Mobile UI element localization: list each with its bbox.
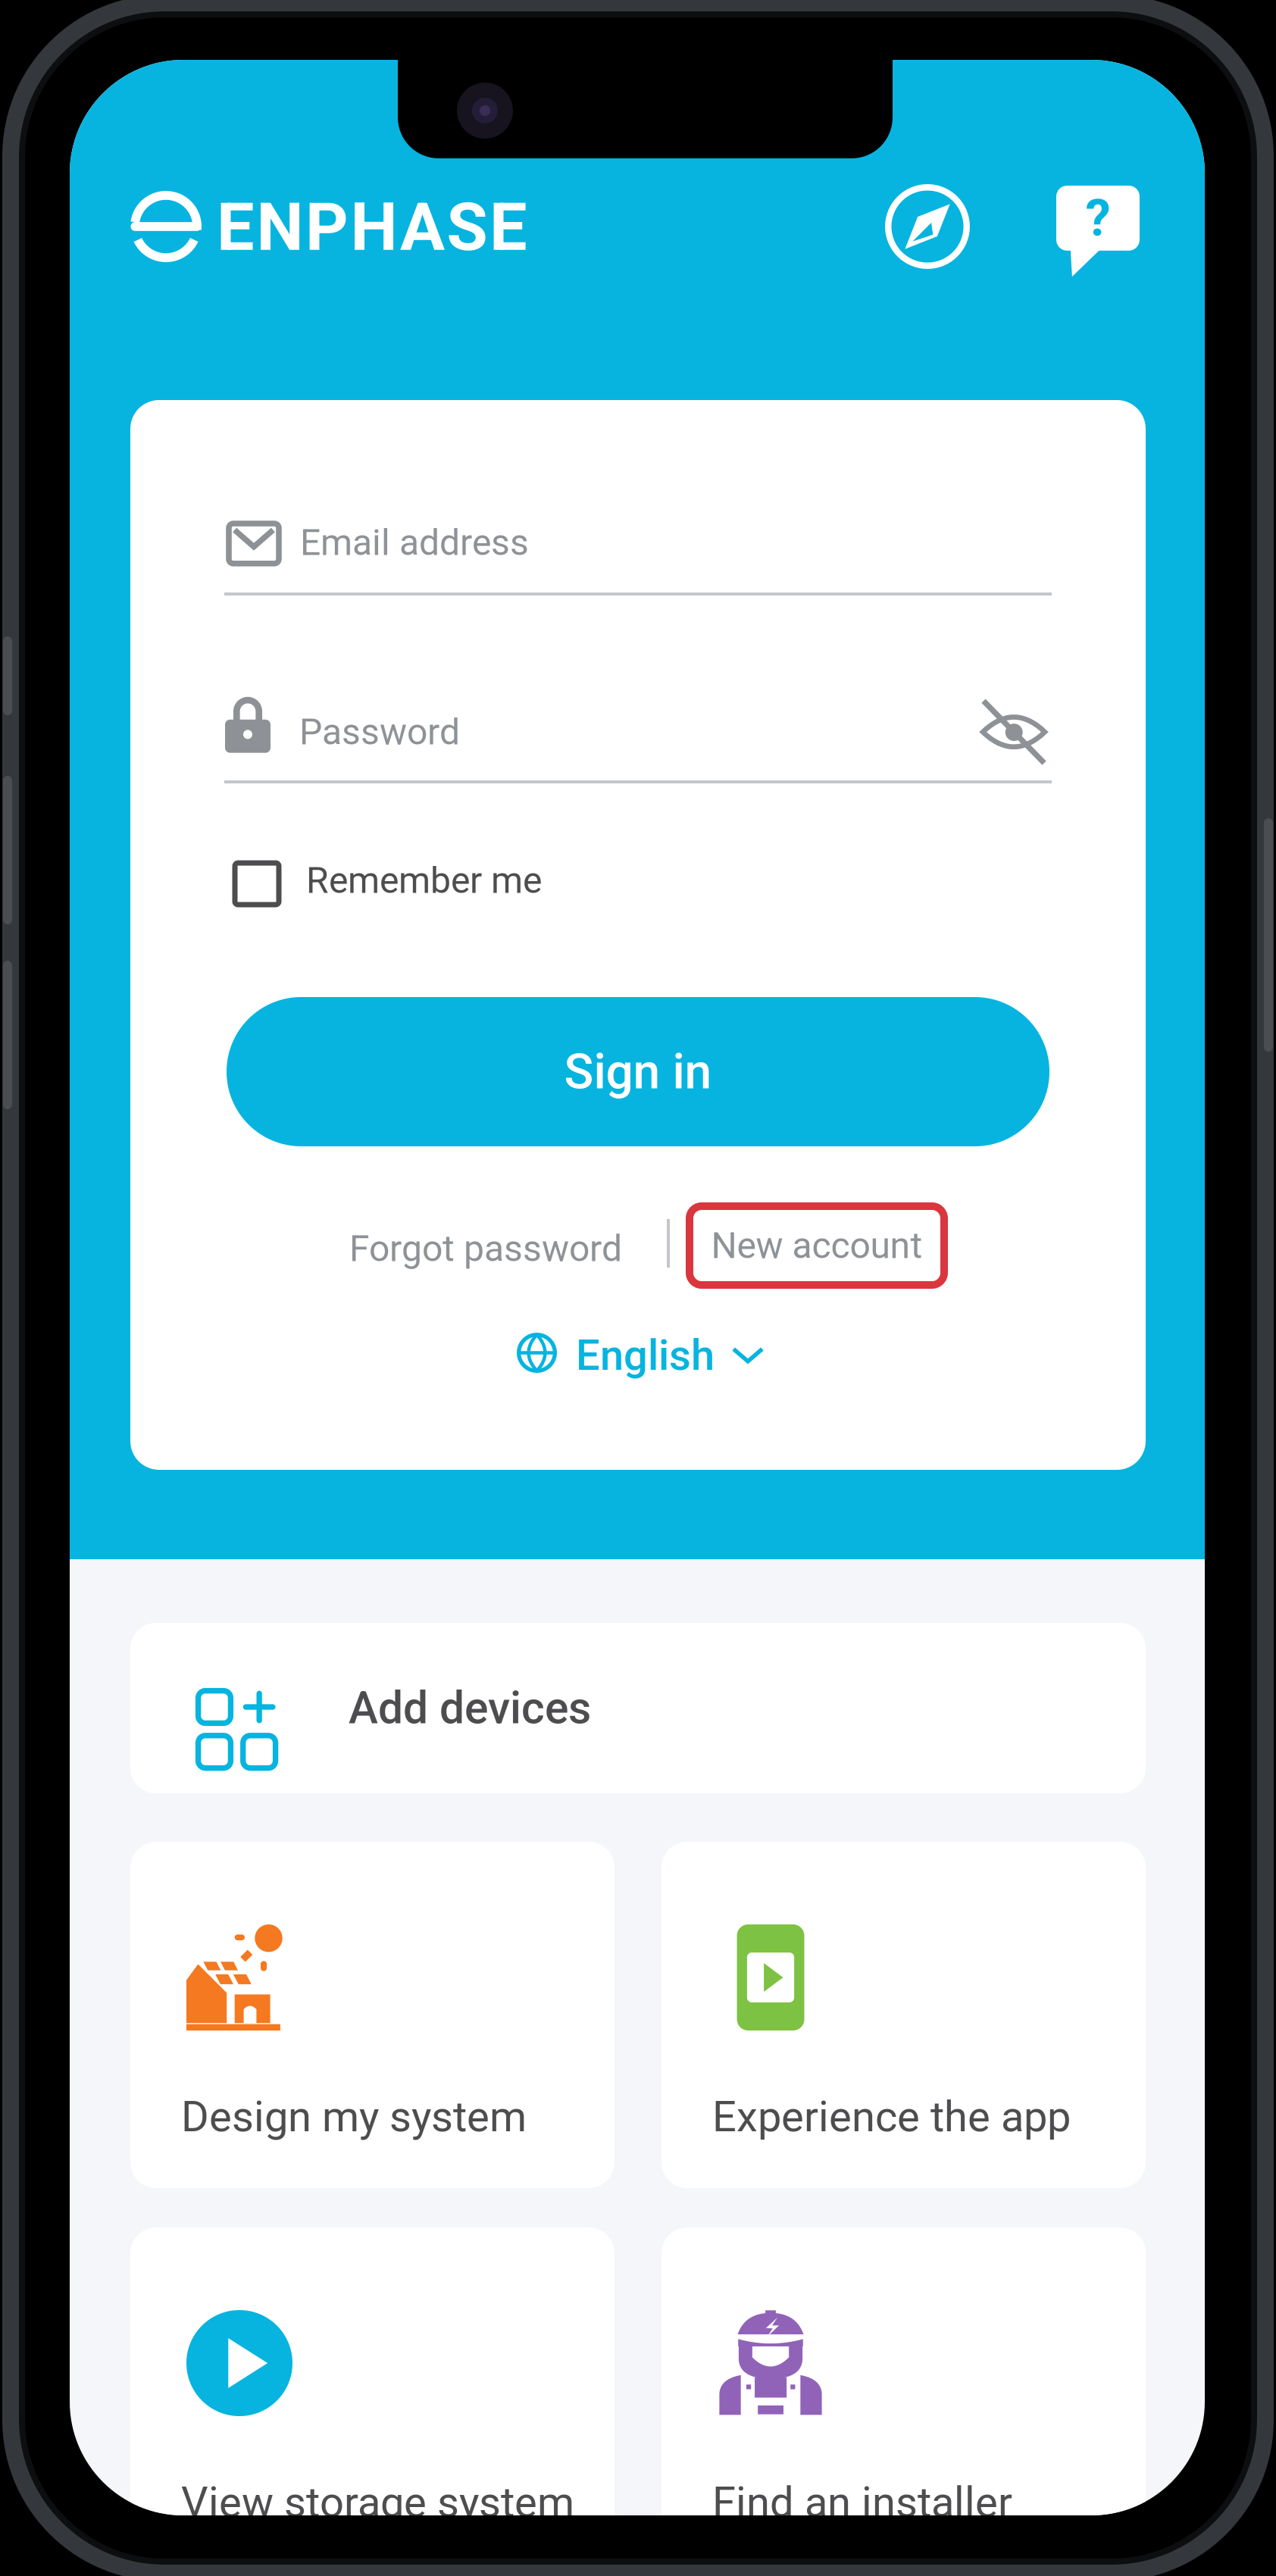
staticText: Forgot password — [349, 1227, 622, 1270]
button[interactable]: Show password — [980, 699, 1048, 765]
staticText: English — [576, 1330, 715, 1380]
staticText: Design my system — [181, 2092, 527, 2142]
staticText: Email address — [300, 521, 529, 564]
staticText: Find an installer — [712, 2478, 1012, 2527]
button[interactable]: Remember me — [235, 863, 659, 916]
button[interactable]: Experience the app — [661, 1842, 1146, 2188]
button[interactable]: Sign in — [227, 997, 1049, 1146]
button[interactable]: View storage system — [130, 2227, 615, 2574]
button[interactable]: Find an installer — [661, 2227, 1146, 2574]
staticText: Add devices — [349, 1682, 591, 1734]
staticText: Experience the app — [712, 2092, 1071, 2142]
staticText: Password — [299, 711, 460, 753]
staticText: Sign in — [564, 1043, 712, 1100]
button[interactable]: Forgot password — [334, 1205, 637, 1292]
button[interactable]: Design my system — [130, 1842, 615, 2188]
staticText: View storage system — [181, 2478, 574, 2527]
button[interactable]: Explore — [865, 164, 990, 289]
staticText: ? — [1085, 189, 1110, 248]
button[interactable]: Add devices — [130, 1623, 1146, 1793]
button[interactable]: English — [512, 1321, 800, 1390]
button[interactable]: New account — [690, 1206, 944, 1285]
staticText: Remember me — [306, 859, 542, 902]
staticText: New account — [711, 1224, 923, 1267]
button[interactable]: Help — [1037, 166, 1159, 298]
staticText: ENPHASE — [217, 188, 527, 266]
